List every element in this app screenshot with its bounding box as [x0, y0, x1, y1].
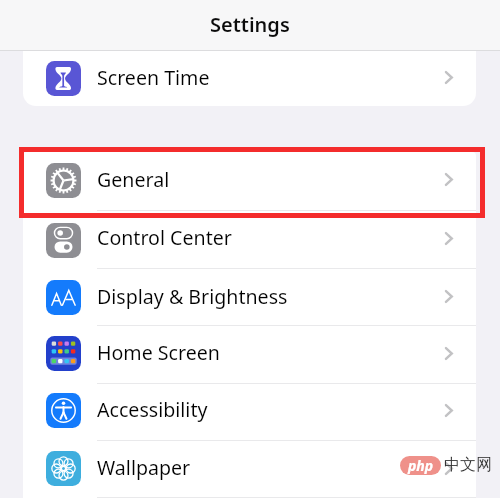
staticText: Control Center — [97, 224, 232, 251]
button[interactable]: Wallpaper — [23, 441, 476, 497]
staticText: Wallpaper — [97, 454, 191, 481]
button[interactable]: General — [23, 152, 476, 210]
button[interactable]: Accessibility — [23, 384, 476, 440]
staticText: Settings — [210, 11, 290, 38]
button[interactable]: Display & Brightness — [23, 269, 476, 325]
button[interactable]: Screen Time — [23, 51, 476, 106]
button[interactable]: Home Screen — [23, 326, 476, 383]
staticText: php — [408, 456, 434, 475]
staticText: Screen Time — [97, 64, 210, 91]
staticText: 中文网 — [444, 455, 492, 475]
staticText: Home Screen — [97, 339, 220, 366]
button[interactable]: Control Center — [23, 211, 476, 268]
staticText: Accessibility — [97, 396, 208, 423]
staticText: General — [97, 166, 170, 193]
staticText: Display & Brightness — [97, 283, 288, 310]
